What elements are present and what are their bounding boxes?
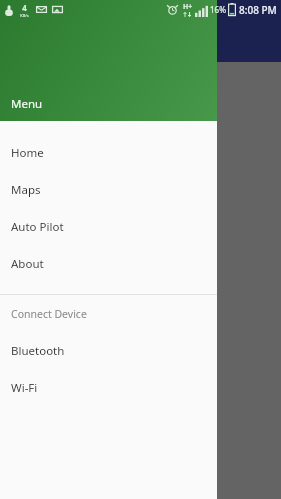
- staticText: 16%: [210, 4, 226, 15]
- button[interactable]: About: [0, 245, 217, 282]
- other: Touch indicator: [3, 4, 15, 16]
- staticText: Connect Device: [11, 307, 87, 321]
- other: Screenshot: [52, 4, 63, 15]
- staticText: Wi-Fi: [11, 380, 38, 396]
- other: Battery 16 percent: [228, 3, 236, 16]
- other: Messages: [36, 4, 47, 15]
- staticText: Bluetooth: [11, 343, 65, 359]
- staticText: 4: [22, 2, 27, 13]
- staticText: Maps: [11, 182, 41, 198]
- staticText: KB/s: [20, 13, 29, 17]
- button[interactable]: Auto Pilot: [0, 208, 217, 245]
- button[interactable]: Maps: [0, 171, 217, 208]
- staticText: About: [11, 256, 44, 272]
- staticText: Home: [11, 145, 44, 161]
- staticText: H+: [183, 2, 193, 12]
- other: Alarm set: [167, 4, 178, 15]
- other: Signal strength: [195, 3, 208, 17]
- staticText: Menu: [11, 96, 43, 112]
- button[interactable]: Home: [0, 134, 217, 171]
- staticText: 8:08 PM: [239, 3, 277, 17]
- button[interactable]: Bluetooth: [0, 332, 217, 369]
- staticText: Auto Pilot: [11, 219, 64, 235]
- button[interactable]: Wi-Fi: [0, 369, 217, 406]
